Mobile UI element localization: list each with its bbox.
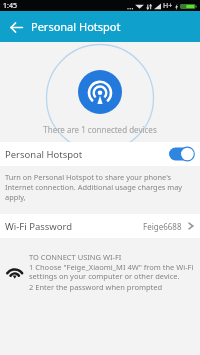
staticText: 1:45 — [3, 1, 17, 11]
staticText: There are 1 connected devices — [0, 124, 200, 135]
staticText: Personal Hotspot — [31, 19, 121, 34]
button[interactable]: Back — [0, 11, 31, 42]
staticText: Personal Hotspot — [5, 148, 83, 161]
staticText: Turn on Personal Hotspot to share your p… — [5, 172, 187, 202]
button[interactable]: Wi-Fi Password — [0, 214, 200, 238]
staticText: 1 Choose "Feige_Xiaomi_MI 4W" from the W… — [29, 262, 195, 282]
staticText: Feige6688 — [143, 221, 182, 232]
staticText: TO CONNECT USING WI-FI — [29, 252, 122, 262]
button[interactable]: Personal Hotspot — [0, 142, 200, 166]
staticText: Wi-Fi Password — [5, 220, 73, 233]
staticText: 2 Enter the password when prompted — [29, 282, 163, 292]
staticText: H+ — [163, 1, 173, 11]
